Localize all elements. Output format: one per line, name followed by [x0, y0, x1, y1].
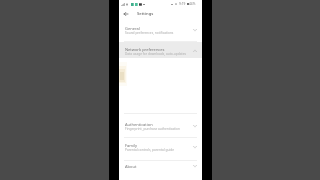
staticText: Network preferences: [125, 47, 165, 52]
other: Expand: [193, 165, 197, 167]
staticText: Family: [125, 143, 138, 148]
staticText: 44%: [189, 2, 196, 6]
button[interactable]: About: [119, 161, 202, 173]
other: Expand: [193, 125, 197, 127]
button[interactable]: General: [119, 23, 202, 41]
staticText: Authentication: [125, 122, 153, 127]
button[interactable]: Back: [121, 9, 130, 18]
other: Expand: [193, 29, 197, 31]
staticText: About: [125, 164, 137, 169]
button[interactable]: Authentication: [119, 119, 202, 137]
staticText: 9:19: [179, 2, 186, 6]
staticText: General: [125, 26, 140, 31]
staticText: Sound preferences, notifications: [125, 31, 174, 35]
staticText: Data usage for downloads, auto-updates: [125, 52, 186, 56]
other: Collapse: [193, 50, 197, 52]
button[interactable]: Network preferences: [119, 44, 202, 62]
button[interactable]: Family: [119, 140, 202, 158]
staticText: Parental controls, parental guide: [125, 148, 174, 152]
staticText: Fingerprint, purchase authentication: [125, 127, 180, 131]
staticText: Settings: [137, 11, 154, 17]
other: Expand: [193, 146, 197, 148]
